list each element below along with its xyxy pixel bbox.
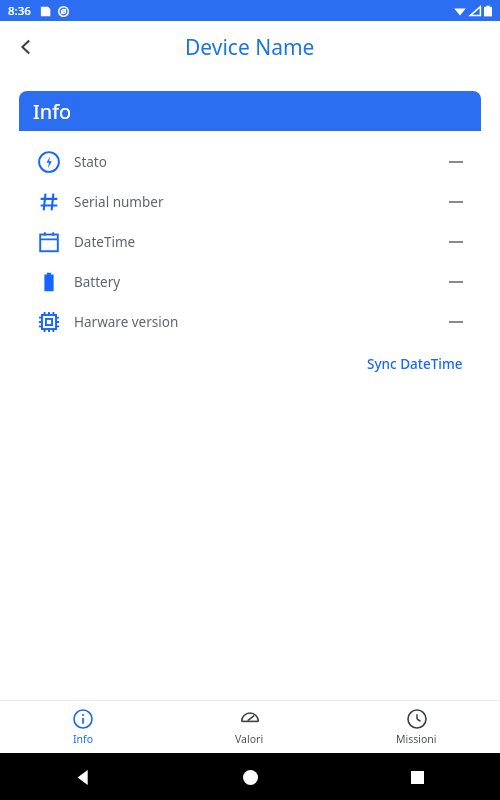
button[interactable]: Serial number <box>19 182 481 222</box>
staticText: Device Name <box>185 33 315 62</box>
staticText: 8:36 <box>8 3 31 19</box>
staticText: Serial number <box>74 193 164 211</box>
button[interactable]: Home <box>233 760 267 794</box>
button[interactable]: Stato <box>19 142 481 182</box>
staticText: Info <box>33 98 72 125</box>
button[interactable]: Info <box>0 703 166 752</box>
button[interactable]: Missioni <box>333 703 500 752</box>
button[interactable]: Sync DateTime <box>349 347 481 381</box>
button[interactable]: Back <box>66 760 100 794</box>
staticText: Missioni <box>396 732 437 746</box>
staticText: Battery <box>74 273 121 291</box>
staticText: Valori <box>235 732 264 746</box>
button[interactable]: Recent apps <box>400 760 434 794</box>
button[interactable]: Battery <box>19 262 481 302</box>
staticText: Sync DateTime <box>367 355 463 373</box>
staticText: Harware version <box>74 313 179 331</box>
staticText: DateTime <box>74 233 136 251</box>
staticText: Stato <box>74 153 107 171</box>
button[interactable]: DateTime <box>19 222 481 262</box>
button[interactable]: Harware version <box>19 302 481 342</box>
button[interactable]: Back <box>4 25 48 69</box>
button[interactable]: Valori <box>166 703 333 752</box>
staticText: Info <box>73 732 94 746</box>
